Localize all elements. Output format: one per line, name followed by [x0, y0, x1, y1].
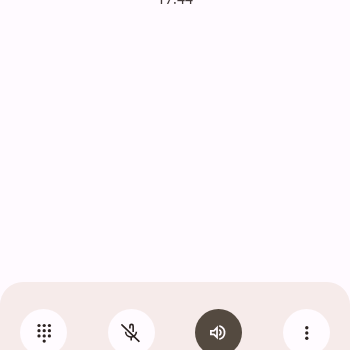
button[interactable]: Unmute microphone [108, 309, 155, 350]
staticText: 17:44 [157, 0, 193, 8]
button[interactable]: Turn off speaker [195, 309, 242, 350]
button[interactable]: Dialpad [20, 309, 67, 350]
button[interactable]: More options [283, 309, 330, 350]
